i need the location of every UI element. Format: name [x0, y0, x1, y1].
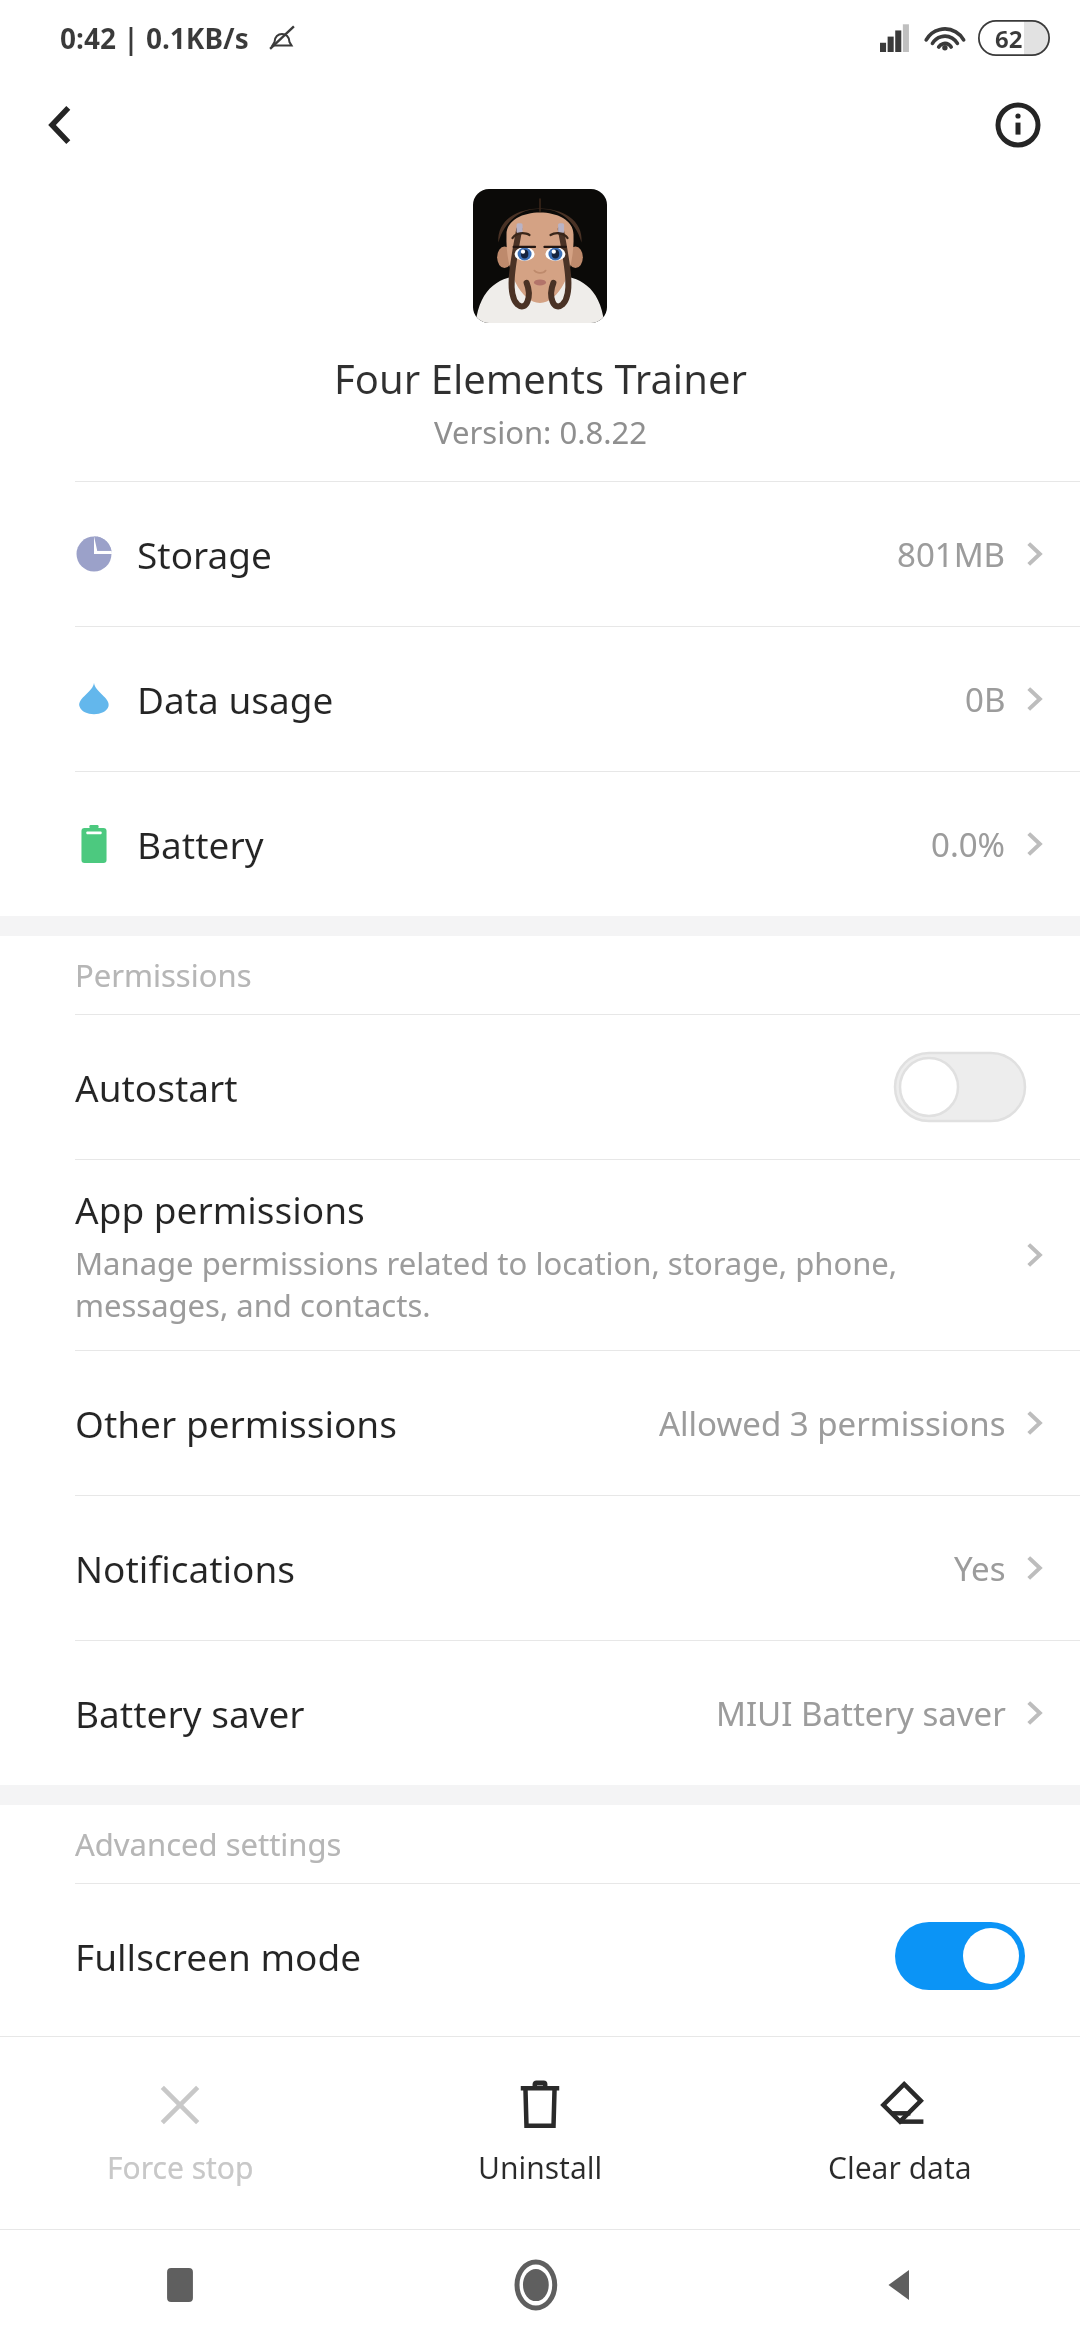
button[interactable]: App info [978, 85, 1058, 165]
staticText: Allowed 3 permissions [659, 1401, 1006, 1446]
button[interactable]: Clear data [720, 2037, 1080, 2229]
staticText: MIUI Battery saver [716, 1691, 1006, 1736]
button[interactable]: Fullscreen mode [0, 1884, 1080, 2028]
button[interactable]: Data usage [0, 627, 1080, 771]
staticText: Fullscreen mode [75, 1931, 895, 1981]
button[interactable]: Home [360, 2230, 720, 2340]
staticText: messages, and contacts. [75, 1284, 431, 1326]
staticText: Storage [137, 529, 897, 579]
button[interactable]: Uninstall [360, 2037, 720, 2229]
staticText: Data usage [137, 674, 965, 724]
staticText: Autostart [75, 1062, 895, 1112]
staticText: 801MB [897, 532, 1006, 577]
button[interactable]: Back [20, 85, 100, 165]
staticText: Other permissions [75, 1398, 659, 1448]
staticText: 0.0% [931, 822, 1006, 867]
staticText: 62 [995, 22, 1023, 55]
staticText: Advanced settings [75, 1823, 342, 1865]
button[interactable]: App permissions [0, 1160, 1080, 1350]
staticText: Permissions [75, 954, 252, 996]
staticText: Four Elements Trainer [334, 351, 747, 405]
button[interactable]: Battery [0, 772, 1080, 916]
button[interactable]: Battery saver [0, 1641, 1080, 1785]
button[interactable]: Back [720, 2230, 1080, 2340]
staticText: Manage permissions related to location, … [75, 1242, 898, 1284]
button[interactable]: Notifications [0, 1496, 1080, 1640]
button[interactable]: Storage [0, 482, 1080, 626]
staticText: Notifications [75, 1543, 954, 1593]
staticText: Yes [954, 1546, 1006, 1591]
button[interactable]: Recent apps [0, 2230, 360, 2340]
staticText: Battery [137, 819, 931, 869]
staticText: 0B [965, 677, 1006, 722]
staticText: 0:42 | 0.1KB/s [60, 19, 249, 57]
button[interactable]: Other permissions [0, 1351, 1080, 1495]
staticText: Battery saver [75, 1688, 716, 1738]
button[interactable]: Autostart [0, 1015, 1080, 1159]
staticText: Uninstall [478, 2147, 603, 2188]
staticText: Clear data [828, 2147, 972, 2188]
staticText: Version: 0.8.22 [434, 411, 647, 453]
staticText: Force stop [107, 2147, 254, 2188]
button[interactable]: Force stop [0, 2037, 360, 2229]
staticText: App permissions [75, 1184, 365, 1234]
